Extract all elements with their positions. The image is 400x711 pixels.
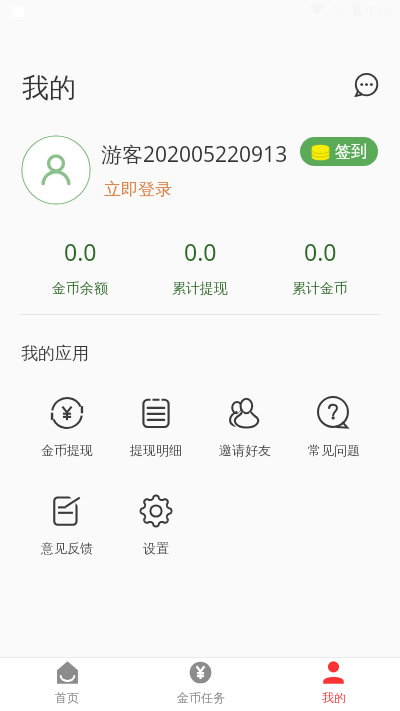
button[interactable]: 金币提现 [22, 394, 111, 460]
staticText: 首页 [55, 690, 79, 705]
staticText: 游客202005220913 [101, 140, 288, 169]
button[interactable]: 我的 [267, 658, 400, 707]
button[interactable]: 签到 [300, 137, 378, 166]
staticText: 金币任务 [177, 690, 225, 705]
staticText: 累计提现 [172, 280, 228, 298]
staticText: 我的应用 [21, 343, 89, 364]
staticText: 我的 [322, 690, 346, 705]
button[interactable]: Avatar [21, 135, 91, 205]
button[interactable]: 常见问题 [289, 394, 378, 460]
staticText: 常见问题 [308, 442, 360, 458]
staticText: 签到 [335, 142, 367, 162]
staticText: 0.0 [184, 236, 217, 267]
staticText: 累计金币 [292, 280, 348, 298]
staticText: 金币提现 [41, 442, 93, 458]
staticText: 金币余额 [52, 280, 108, 298]
button[interactable]: Messages [348, 68, 384, 104]
staticText: 0.0 [64, 236, 97, 267]
button[interactable]: 意见反馈 [22, 492, 111, 558]
button[interactable]: 立即登录 [104, 179, 172, 200]
staticText: 意见反馈 [41, 540, 93, 556]
button[interactable]: 邀请好友 [200, 394, 289, 460]
button[interactable]: 0.0 [140, 236, 260, 298]
button[interactable]: 提现明细 [111, 394, 200, 460]
staticText: 我的 [22, 71, 76, 105]
staticText: 0.0 [304, 236, 337, 267]
button[interactable]: 0.0 [20, 236, 140, 298]
button[interactable]: 首页 [0, 658, 134, 707]
staticText: 提现明细 [130, 442, 182, 458]
button[interactable]: 设置 [111, 492, 200, 558]
button[interactable]: 0.0 [260, 236, 380, 298]
button[interactable]: 金币任务 [134, 658, 267, 707]
staticText: 邀请好友 [219, 442, 271, 458]
staticText: 设置 [143, 540, 169, 556]
